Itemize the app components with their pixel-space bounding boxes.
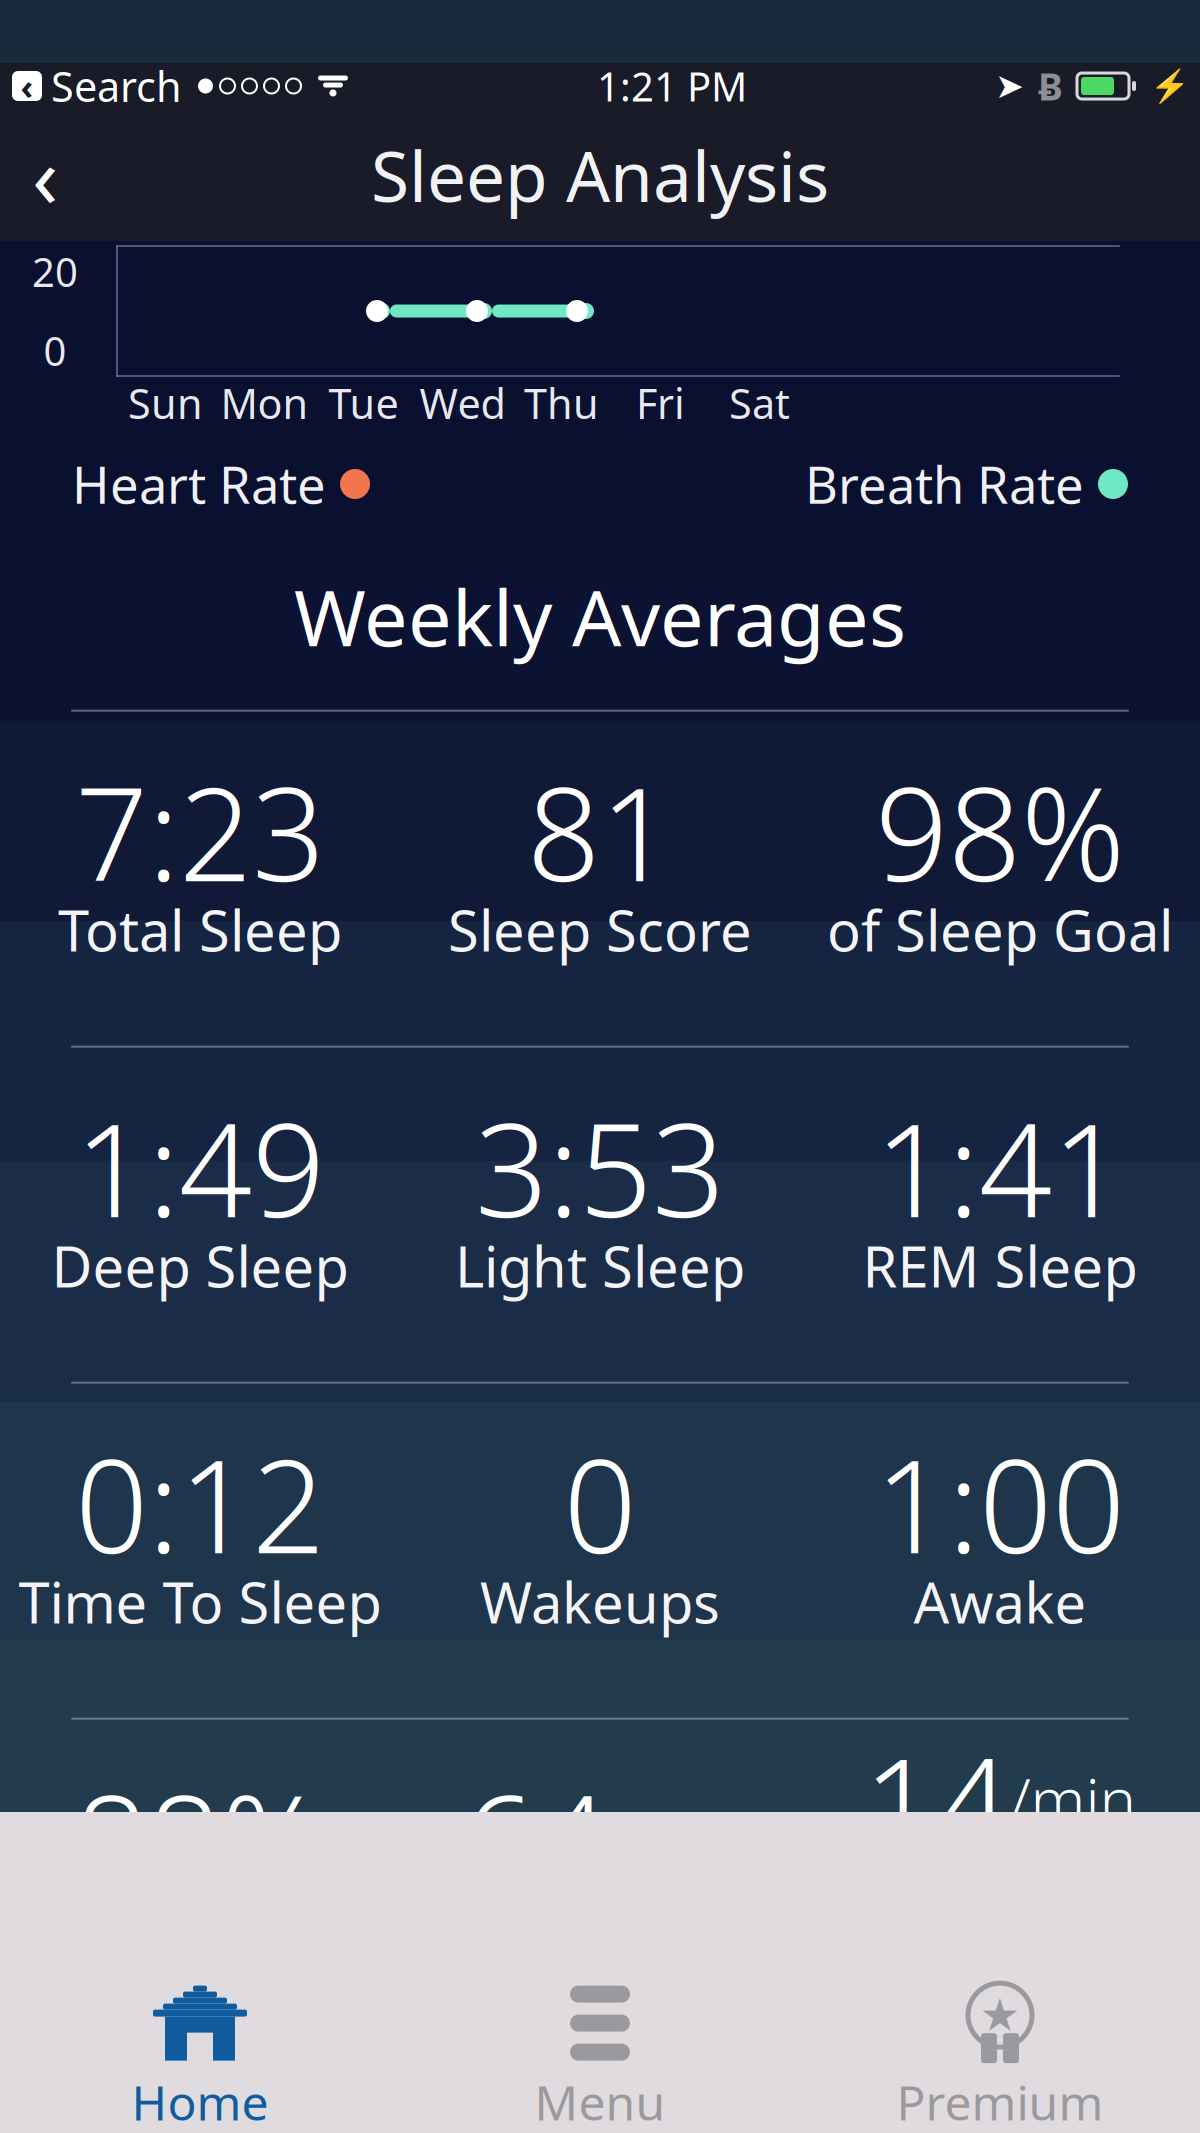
staticText: Ƀ bbox=[1038, 61, 1063, 111]
staticText: 7:23 bbox=[75, 746, 325, 916]
staticText: 1:21 PM bbox=[597, 59, 747, 112]
staticText: 0 bbox=[563, 1418, 636, 1588]
button[interactable]: Menu bbox=[400, 1972, 800, 2133]
staticText: 0:12 bbox=[75, 1418, 325, 1588]
staticText: Fri bbox=[636, 376, 685, 430]
staticText: Sat bbox=[729, 376, 790, 430]
staticText: 1:00 bbox=[875, 1418, 1125, 1588]
staticText: bpm bbox=[608, 1795, 737, 1876]
staticText: Premium bbox=[896, 2070, 1103, 2133]
staticText: ‹ bbox=[20, 63, 33, 109]
staticText: /min bbox=[1009, 1758, 1136, 1839]
staticText: ➤ bbox=[995, 66, 1024, 106]
staticText: ⚡ bbox=[1150, 68, 1190, 104]
staticText: REM Sleep bbox=[862, 1228, 1137, 1303]
staticText: of Sleep Goal bbox=[827, 892, 1173, 967]
staticText: 1:49 bbox=[75, 1082, 325, 1252]
staticText: Deep Sleep bbox=[51, 1228, 348, 1303]
staticText: Heart Rate bbox=[72, 450, 326, 518]
button[interactable]: Home bbox=[0, 1972, 400, 2133]
staticText: Home bbox=[131, 2070, 268, 2133]
staticText: ★ bbox=[979, 1989, 1020, 2041]
staticText: Breath Rate bbox=[805, 450, 1084, 518]
staticText: Sun bbox=[128, 376, 203, 430]
staticText: 20 bbox=[32, 245, 78, 298]
button[interactable]: ★ bbox=[800, 1972, 1200, 2133]
staticText: Light Sleep bbox=[455, 1228, 745, 1303]
staticText: Sleep Score bbox=[448, 892, 752, 967]
staticText: ‹ bbox=[32, 118, 58, 232]
staticText: Wed bbox=[419, 376, 505, 430]
staticText: Thu bbox=[524, 376, 599, 430]
staticText: Weekly Averages bbox=[294, 565, 906, 668]
staticText: Sleep Analysis bbox=[371, 129, 829, 221]
staticText: 3:53 bbox=[475, 1082, 725, 1252]
staticText: Total Sleep bbox=[58, 892, 342, 967]
staticText: 14 bbox=[863, 1717, 1009, 1887]
staticText: Search bbox=[51, 59, 182, 113]
staticText: Wakeups bbox=[480, 1564, 720, 1639]
staticText: Tue bbox=[328, 376, 398, 430]
staticText: 64 bbox=[462, 1754, 608, 1924]
button[interactable]: Back bbox=[0, 125, 90, 225]
staticText: Menu bbox=[534, 2070, 665, 2133]
staticText: Avg Breath Rate bbox=[855, 1863, 1144, 2012]
staticText: 88% bbox=[75, 1754, 325, 1924]
staticText: 81 bbox=[527, 746, 673, 916]
staticText: 98% bbox=[875, 746, 1125, 916]
staticText: 1:41 bbox=[875, 1082, 1125, 1252]
staticText: Mon bbox=[220, 376, 308, 430]
staticText: Time To Sleep bbox=[18, 1564, 381, 1639]
staticText: Awake bbox=[913, 1564, 1086, 1639]
staticText: 0 bbox=[43, 324, 66, 377]
